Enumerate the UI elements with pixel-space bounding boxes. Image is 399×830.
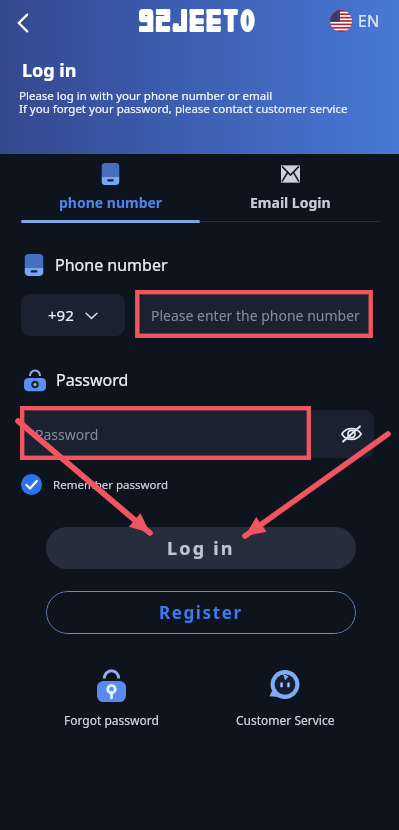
button[interactable]: Remember password <box>21 474 169 495</box>
staticText: Please log in with your phone number or … <box>19 88 273 104</box>
button[interactable]: EN <box>330 10 380 32</box>
button[interactable]: phone number <box>21 154 200 224</box>
staticText: Log in <box>22 58 77 83</box>
button[interactable]: Show password <box>328 411 374 457</box>
staticText: Log in <box>167 536 235 561</box>
button[interactable]: Log in <box>46 527 356 569</box>
button[interactable]: Customer Service <box>235 669 335 728</box>
staticText: Email Login <box>250 193 331 212</box>
staticText: phone number <box>59 193 163 212</box>
button[interactable]: Please enter the phone number <box>137 294 373 336</box>
staticText: Please enter the phone number <box>151 306 360 325</box>
button[interactable]: Register <box>46 591 356 634</box>
staticText: Phone number <box>55 254 168 276</box>
staticText: Remember password <box>53 477 169 493</box>
staticText: EN <box>358 10 380 32</box>
staticText: Customer Service <box>236 712 335 728</box>
staticText: Register <box>159 601 243 624</box>
staticText: +92 <box>48 305 74 325</box>
staticText: Password <box>56 369 129 391</box>
button[interactable]: +92 <box>21 294 125 336</box>
button[interactable]: Forgot password <box>62 669 160 728</box>
button[interactable]: Back <box>3 3 43 43</box>
button[interactable]: Email Login <box>200 154 380 224</box>
staticText: Forgot password <box>64 712 159 728</box>
staticText: If you forget your password, please cont… <box>19 101 348 117</box>
staticText: Password <box>35 425 99 444</box>
